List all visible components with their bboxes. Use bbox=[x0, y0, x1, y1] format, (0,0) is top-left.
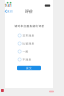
staticText: 一般 bbox=[23, 50, 29, 53]
staticText: 提交 bbox=[26, 66, 32, 70]
button[interactable]: 一般 bbox=[18, 49, 42, 54]
staticText: 评价 bbox=[25, 9, 33, 14]
staticText: 9:41 bbox=[5, 4, 12, 7]
button[interactable]: 返回 bbox=[5, 9, 14, 14]
button[interactable]: 比较满意 bbox=[18, 41, 42, 46]
staticText: 非常满意 bbox=[23, 34, 35, 37]
button[interactable]: 提交 bbox=[17, 66, 41, 70]
staticText: 请对本次服务做出评价 bbox=[14, 24, 44, 28]
staticText: 不满意 bbox=[23, 58, 32, 61]
button[interactable]: 非常满意 bbox=[18, 33, 42, 38]
staticText: 返回 bbox=[7, 10, 13, 13]
staticText: 比较满意 bbox=[23, 42, 35, 45]
button[interactable]: 不满意 bbox=[18, 57, 42, 62]
